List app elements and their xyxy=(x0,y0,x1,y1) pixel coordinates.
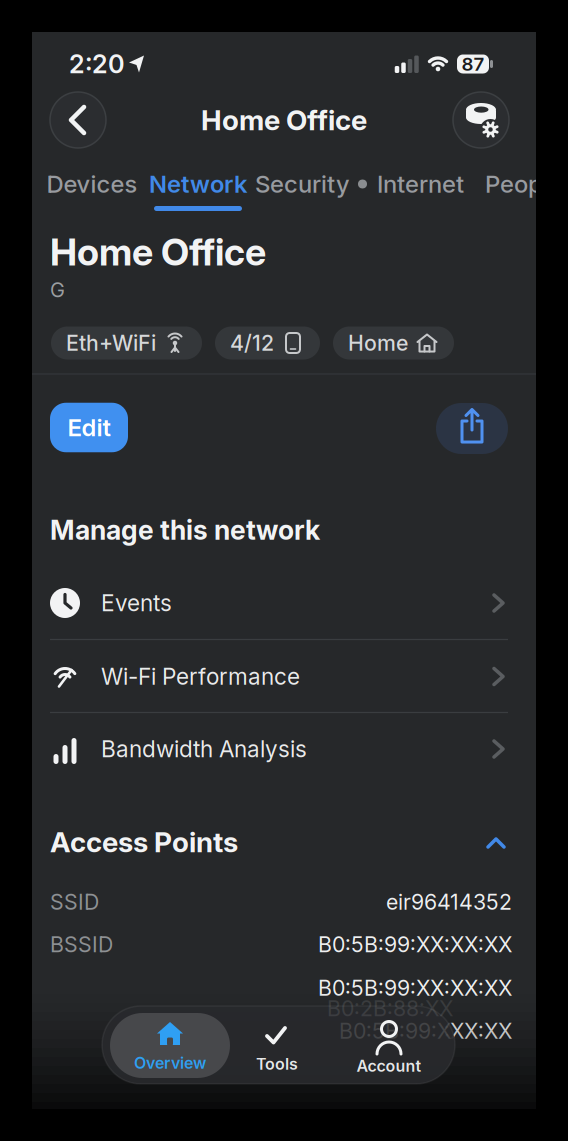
button[interactable]: Events xyxy=(48,566,510,639)
staticText: Overview xyxy=(134,1054,206,1072)
button[interactable]: Account xyxy=(349,1015,429,1077)
staticText: Network xyxy=(149,170,247,198)
button[interactable]: Internet xyxy=(377,170,464,198)
staticText: :XX:XX xyxy=(444,1018,512,1044)
staticText: eir96414352 xyxy=(386,889,512,915)
staticText: Eth+WiFi xyxy=(66,330,156,356)
staticText: Wi-Fi Performance xyxy=(101,663,300,690)
staticText: 2:20 xyxy=(69,49,125,79)
staticText: Manage this network xyxy=(50,514,320,546)
staticText: Home Office xyxy=(201,103,367,136)
staticText: Account xyxy=(356,1057,421,1075)
staticText: SSID xyxy=(50,889,99,915)
staticText: B0:5B:99:XX:XX:XX xyxy=(318,975,512,1001)
button[interactable]: Devices xyxy=(46,170,137,198)
button[interactable]: Bandwidth Analysis xyxy=(48,712,510,785)
staticText: Access Points xyxy=(50,825,238,858)
button[interactable]: Edit xyxy=(50,403,128,452)
button[interactable]: Access Points xyxy=(50,826,512,858)
staticText: Bandwidth Analysis xyxy=(101,736,307,762)
staticText: BSSID xyxy=(50,932,113,957)
button[interactable]: Share xyxy=(436,403,508,454)
staticText: G xyxy=(50,278,65,302)
staticText: Home xyxy=(348,330,408,356)
staticText: 4/12 xyxy=(230,330,274,356)
staticText: Devices xyxy=(46,170,137,198)
button[interactable]: Device settings xyxy=(453,92,509,148)
button[interactable]: Tools xyxy=(237,1015,317,1077)
staticText: Security xyxy=(255,170,350,198)
button[interactable]: Overview xyxy=(110,1013,230,1078)
button[interactable]: Wi-Fi Performance xyxy=(48,640,510,713)
staticText: Events xyxy=(101,590,172,616)
staticText: Internet xyxy=(377,170,464,198)
button[interactable]: Network xyxy=(149,170,247,198)
staticText: Home Office xyxy=(50,230,266,274)
staticText: B0:2B:88:XX xyxy=(327,996,453,1021)
staticText: Edit xyxy=(67,413,110,442)
staticText: B0:5B:99:X xyxy=(339,1018,451,1044)
staticText: People xyxy=(485,170,563,198)
staticText: Tools xyxy=(256,1055,298,1073)
button[interactable]: Security xyxy=(255,170,367,198)
staticText: B0:5B:99:XX:XX:XX xyxy=(318,932,512,957)
button[interactable]: Back xyxy=(50,92,106,148)
button[interactable]: People xyxy=(485,170,563,198)
staticText: 87 xyxy=(461,53,484,75)
